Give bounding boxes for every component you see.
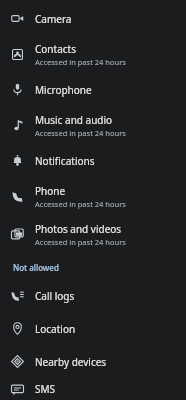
staticText: Accessed in past 24 hours [35, 237, 126, 247]
staticText: Microphone [35, 83, 92, 97]
staticText: Phone [35, 184, 66, 198]
staticText: Photos and videos [35, 222, 122, 236]
button[interactable]: Microphone [0, 73, 186, 106]
button[interactable]: Location [0, 312, 186, 345]
button[interactable]: Notifications [0, 144, 186, 177]
staticText: Contacts [35, 42, 76, 56]
button[interactable]: Photos and videos [0, 215, 186, 253]
button[interactable]: SMS [0, 378, 186, 400]
button[interactable]: Contacts [0, 35, 186, 73]
staticText: Location [35, 322, 76, 336]
staticText: Nearby devices [35, 355, 107, 369]
staticText: Notifications [35, 154, 95, 168]
button[interactable]: Music and audio [0, 106, 186, 144]
staticText: Not allowed [13, 262, 59, 273]
staticText: Accessed in past 24 hours [35, 199, 126, 209]
staticText: Accessed in past 24 hours [35, 128, 126, 138]
staticText: Accessed in past 24 hours [35, 57, 126, 67]
staticText: Music and audio [35, 113, 113, 127]
staticText: Camera [35, 12, 72, 26]
button[interactable]: Camera [0, 2, 186, 35]
button[interactable]: Nearby devices [0, 345, 186, 378]
staticText: SMS [35, 382, 56, 396]
staticText: Call logs [35, 289, 75, 303]
button[interactable]: Call logs [0, 279, 186, 312]
button[interactable]: Phone [0, 177, 186, 215]
